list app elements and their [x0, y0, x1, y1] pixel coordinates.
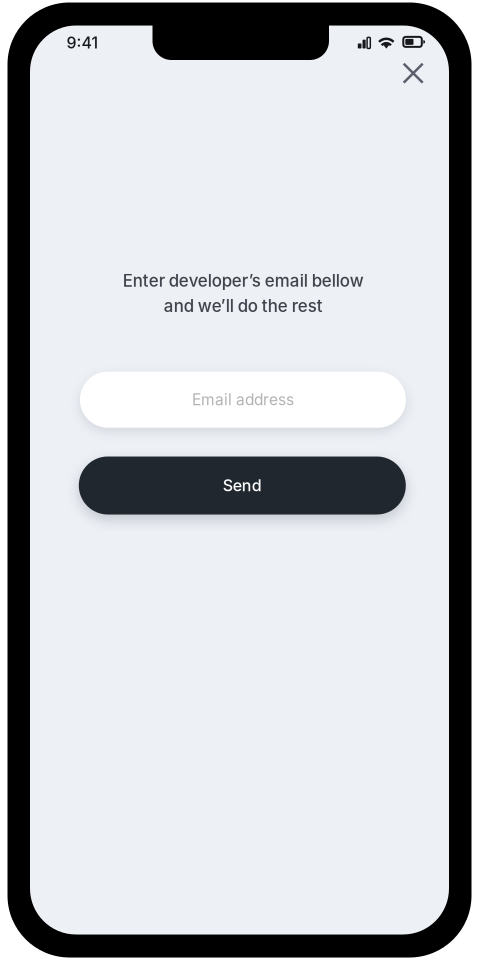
staticText: 9:41 — [67, 33, 99, 52]
button[interactable]: Send — [79, 456, 406, 514]
staticText: Send — [223, 476, 262, 495]
staticText: Enter developer’s email bellow and we’ll… — [122, 270, 363, 316]
button[interactable]: Close — [391, 51, 435, 95]
button[interactable]: Email address — [80, 372, 406, 428]
staticText: Email address — [192, 390, 294, 409]
